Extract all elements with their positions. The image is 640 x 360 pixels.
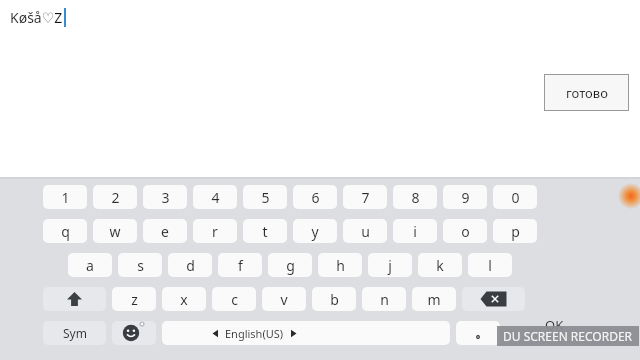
staticText: j [388, 256, 392, 275]
staticText: p [511, 222, 520, 241]
button[interactable]: w [93, 219, 137, 243]
staticText: 2 [111, 188, 120, 207]
button[interactable]: Sym [43, 321, 106, 345]
staticText: 4 [211, 188, 220, 207]
staticText: o [461, 222, 470, 241]
staticText: w [109, 222, 121, 241]
staticText: готово [566, 84, 608, 102]
button[interactable]: l [468, 253, 512, 277]
button[interactable]: j [368, 253, 412, 277]
staticText: m [427, 290, 441, 309]
staticText: c [231, 290, 238, 309]
button[interactable]: h [318, 253, 362, 277]
staticText: x [180, 290, 188, 309]
staticText: s [137, 256, 144, 275]
staticText: f [238, 256, 243, 275]
staticText: r [212, 222, 218, 241]
button[interactable]: i [393, 219, 437, 243]
staticText: e [161, 222, 169, 241]
staticText: 8 [411, 188, 420, 207]
button[interactable]: 5 [243, 185, 287, 209]
staticText: n [380, 290, 389, 309]
button[interactable]: Period [456, 321, 500, 345]
button[interactable]: d [168, 253, 212, 277]
staticText: 5 [261, 188, 270, 207]
staticText: t [262, 222, 268, 241]
button[interactable]: r [193, 219, 237, 243]
button[interactable]: 0 [493, 185, 537, 209]
staticText: q [61, 222, 70, 241]
button[interactable]: t [243, 219, 287, 243]
button[interactable]: x [162, 287, 206, 311]
button[interactable]: Space, English(US) [162, 321, 450, 345]
button[interactable]: 6 [293, 185, 337, 209]
staticText: u [361, 222, 370, 241]
button[interactable]: 3 [143, 185, 187, 209]
button[interactable]: e [143, 219, 187, 243]
staticText: 7 [361, 188, 370, 207]
button[interactable]: 2 [93, 185, 137, 209]
button[interactable]: y [293, 219, 337, 243]
staticText: a [86, 256, 94, 275]
button[interactable]: 7 [343, 185, 387, 209]
staticText: English(US) [225, 326, 284, 341]
button[interactable]: a [68, 253, 112, 277]
staticText: z [131, 290, 138, 309]
button[interactable]: c [212, 287, 256, 311]
button[interactable]: m [412, 287, 456, 311]
staticText: Køšå♡Z [10, 8, 63, 27]
staticText: 3 [161, 188, 170, 207]
button[interactable]: 1 [43, 185, 87, 209]
button[interactable]: n [362, 287, 406, 311]
button[interactable]: u [343, 219, 387, 243]
staticText: k [436, 256, 444, 275]
staticText: l [488, 256, 492, 275]
staticText: 6 [311, 188, 320, 207]
staticText: OK [545, 316, 564, 334]
staticText: i [413, 222, 417, 241]
button[interactable]: q [43, 219, 87, 243]
staticText: DU SCREEN RECORDER [503, 328, 633, 344]
button[interactable]: 8 [393, 185, 437, 209]
button[interactable]: b [312, 287, 356, 311]
button[interactable]: 9 [443, 185, 487, 209]
button[interactable]: z [112, 287, 156, 311]
staticText: y [311, 222, 319, 241]
staticText: 1 [61, 188, 70, 207]
button[interactable]: g [268, 253, 312, 277]
staticText: g [286, 256, 295, 275]
staticText: 0 [511, 188, 520, 207]
button[interactable]: s [118, 253, 162, 277]
button[interactable]: Emoji [112, 321, 156, 345]
button[interactable]: Backspace [462, 287, 525, 311]
staticText: v [280, 290, 288, 309]
button[interactable]: p [493, 219, 537, 243]
button[interactable]: готово [544, 74, 629, 111]
button[interactable]: o [443, 219, 487, 243]
button[interactable]: v [262, 287, 306, 311]
staticText: 9 [461, 188, 470, 207]
staticText: b [330, 290, 339, 309]
button[interactable]: Shift [43, 287, 106, 311]
button[interactable]: 4 [193, 185, 237, 209]
staticText: h [336, 256, 345, 275]
button[interactable]: k [418, 253, 462, 277]
staticText: d [186, 256, 195, 275]
staticText: Sym [63, 325, 87, 341]
button[interactable]: f [218, 253, 262, 277]
